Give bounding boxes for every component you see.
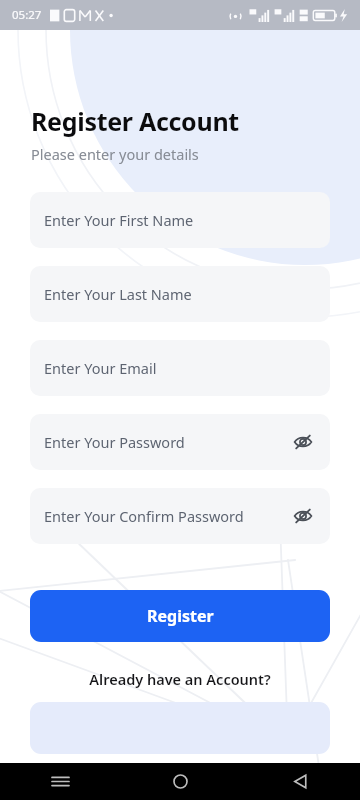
staticText: Enter Your Email [44,358,316,378]
button[interactable]: Enter Your Password [30,414,330,470]
button[interactable]: Register [30,590,330,642]
staticText: 05:27 [12,7,42,23]
staticText: Enter Your Confirm Password [44,506,290,526]
button[interactable]: Enter Your Last Name [30,266,330,322]
button[interactable]: Show password [290,503,316,529]
staticText: Enter Your First Name [44,210,316,230]
button[interactable]: Enter Your First Name [30,192,330,248]
staticText: Please enter your details [31,144,199,164]
button[interactable]: Enter Your Email [30,340,330,396]
button[interactable]: Recent apps [0,763,120,800]
staticText: Register Account [31,104,239,138]
button[interactable]: Home [120,763,240,800]
button[interactable]: Show password [290,429,316,455]
button[interactable]: Enter Your Confirm Password [30,488,330,544]
staticText: Already have an Account? [0,669,360,689]
staticText: Enter Your Last Name [44,284,316,304]
staticText: Enter Your Password [44,432,290,452]
staticText: Register [147,605,214,627]
button[interactable]: Back [240,763,360,800]
